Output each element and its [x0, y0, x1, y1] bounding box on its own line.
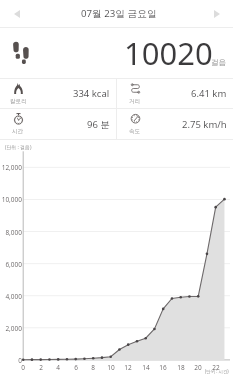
staticText: 2,000 [0, 324, 22, 333]
button[interactable]: 속도 [117, 109, 233, 139]
staticText: (단위 : 시간) [205, 368, 229, 374]
staticText: 걸음 [211, 58, 227, 68]
staticText: 12,000 [0, 163, 22, 172]
staticText: 12 [120, 363, 136, 372]
staticText: 4 [50, 363, 66, 372]
staticText: 6 [68, 363, 84, 372]
staticText: 6.41 km [191, 87, 227, 100]
staticText: 속도 [129, 128, 141, 135]
staticText: 2.75 km/h [182, 118, 227, 131]
staticText: 96 분 [87, 118, 110, 131]
button[interactable]: Previous day [0, 0, 34, 27]
staticText: 14 [138, 363, 154, 372]
staticText: 20 [190, 363, 206, 372]
staticText: 8 [85, 363, 101, 372]
staticText: 10020 [124, 32, 213, 74]
staticText: 시간 [12, 128, 24, 135]
staticText: 16 [155, 363, 171, 372]
button[interactable]: 10020 [0, 28, 233, 78]
staticText: 22 [208, 363, 224, 372]
staticText: 8,000 [0, 228, 22, 237]
staticText: 4,000 [0, 292, 22, 301]
staticText: 10 [103, 363, 119, 372]
staticText: 18 [173, 363, 189, 372]
button[interactable]: 시간 [0, 109, 116, 139]
staticText: 0 [15, 363, 31, 372]
staticText: 6,000 [0, 260, 22, 269]
staticText: 07월 23일 금요일 [81, 7, 157, 20]
button[interactable]: 거리 [117, 79, 233, 108]
staticText: (단위 : 걸음) [5, 144, 32, 151]
staticText: 2 [33, 363, 49, 372]
staticText: 0 [0, 356, 22, 365]
staticText: 334 kcal [73, 87, 110, 100]
button[interactable]: 칼로리 [0, 79, 116, 108]
staticText: 10,000 [0, 195, 22, 204]
button[interactable]: Next day [199, 0, 233, 27]
staticText: 칼로리 [10, 98, 27, 105]
staticText: 거리 [129, 98, 141, 105]
